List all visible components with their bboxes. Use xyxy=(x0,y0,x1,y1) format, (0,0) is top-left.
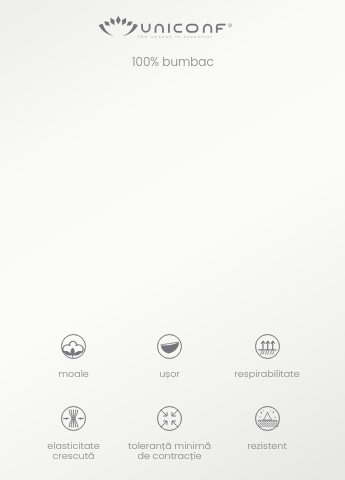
button[interactable]: Minimal shrinkage xyxy=(104,402,234,462)
staticText: moale xyxy=(58,367,89,380)
button[interactable]: Increased elasticity xyxy=(8,402,138,462)
button[interactable]: Soft xyxy=(8,330,138,380)
staticText: elasticitate crescută xyxy=(47,439,100,462)
staticText: respirabilitate xyxy=(234,367,300,380)
staticText: 100% bumbac xyxy=(132,53,214,70)
staticText: toleranță minimă de contracție xyxy=(128,439,211,462)
button[interactable]: Light xyxy=(104,330,234,380)
button[interactable]: Durable xyxy=(202,402,332,452)
staticText: ușor xyxy=(159,367,180,380)
staticText: rezistent xyxy=(247,439,287,452)
button[interactable]: Breathable xyxy=(202,330,332,380)
staticText: the unseen is essential xyxy=(138,34,213,40)
